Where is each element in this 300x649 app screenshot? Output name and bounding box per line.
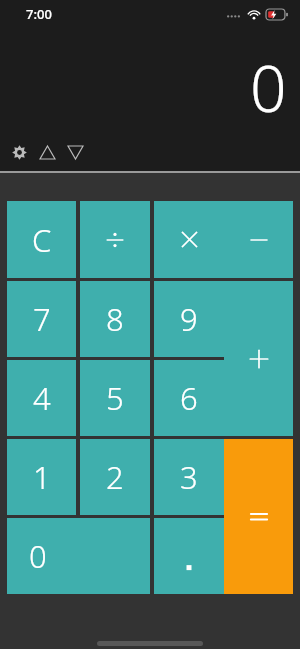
staticText: 5	[106, 377, 124, 419]
staticText: 1	[33, 456, 51, 498]
staticText: C	[32, 219, 52, 261]
button[interactable]: 2	[80, 439, 150, 515]
staticText: 3	[180, 456, 198, 498]
button[interactable]: 7	[7, 281, 76, 357]
button[interactable]: 8	[80, 281, 150, 357]
staticText: 7	[33, 298, 51, 340]
button[interactable]: 3	[154, 439, 224, 515]
button[interactable]: 9	[154, 281, 224, 357]
staticText: 6	[180, 377, 198, 419]
button[interactable]: 1	[7, 439, 76, 515]
staticText: 0	[29, 535, 47, 577]
button[interactable]	[80, 201, 150, 278]
staticText: 0	[250, 44, 287, 131]
button[interactable]: Scroll up	[35, 140, 59, 164]
button[interactable]: C	[7, 201, 76, 278]
button[interactable]: 0	[7, 518, 150, 594]
staticText: 2	[106, 456, 124, 498]
button[interactable]: Settings	[7, 140, 31, 164]
button[interactable]: 5	[80, 360, 150, 436]
staticText: 9	[180, 298, 198, 340]
button[interactable]: 6	[154, 360, 224, 436]
button[interactable]	[224, 439, 293, 594]
staticText: 4	[33, 377, 51, 419]
button[interactable]	[154, 201, 224, 278]
button[interactable]	[224, 201, 293, 278]
staticText: 7:00	[26, 5, 52, 23]
button[interactable]	[224, 281, 293, 436]
button[interactable]: 4	[7, 360, 76, 436]
staticText: 8	[106, 298, 124, 340]
button[interactable]: Scroll down	[63, 140, 87, 164]
button[interactable]	[154, 518, 224, 594]
